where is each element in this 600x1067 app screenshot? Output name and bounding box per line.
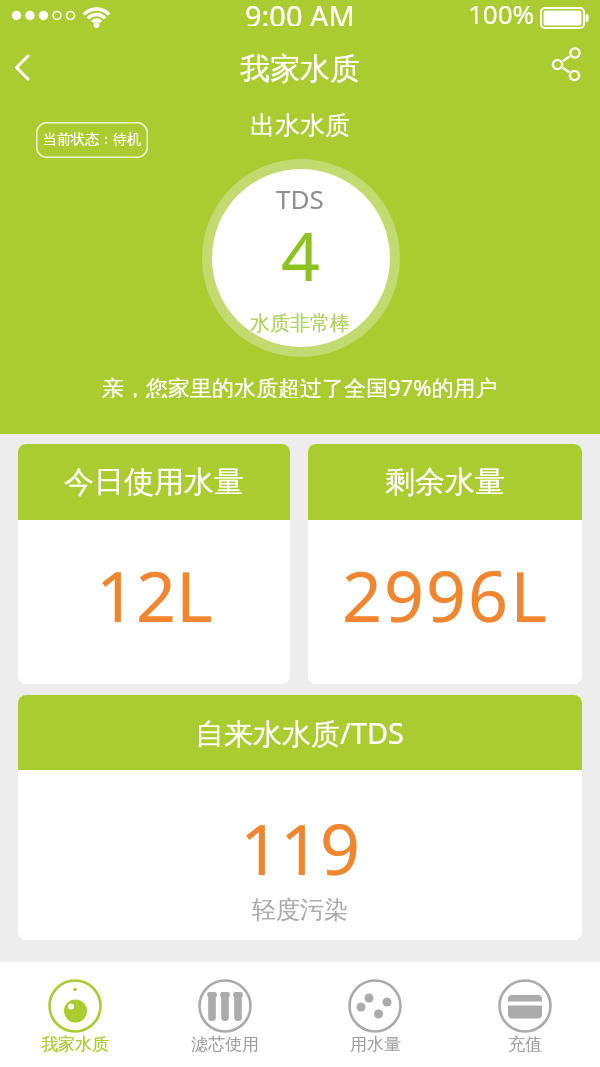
button[interactable]: 滤芯使用 (150, 962, 300, 1067)
staticText: 出水水质 (250, 110, 350, 138)
staticText: 我家水质 (240, 50, 360, 86)
button[interactable]: 我家水质 (0, 962, 150, 1067)
staticText: 2996L (342, 547, 549, 642)
staticText: 自来水水质/TDS (195, 713, 405, 753)
button[interactable] (540, 40, 596, 96)
staticText: 100% (468, 0, 535, 26)
staticText: TDS (276, 181, 324, 209)
staticText: 当前状态：待机 (43, 131, 141, 149)
staticText: 9:00 AM (245, 0, 355, 26)
staticText: 剩余水量 (385, 463, 505, 501)
button[interactable]: 用水量 (300, 962, 450, 1067)
staticText: 119 (240, 800, 361, 895)
staticText: 水质非常棒 (250, 311, 350, 335)
button[interactable]: 剩余水量 (308, 444, 582, 684)
button[interactable]: 今日使用水量 (18, 444, 290, 684)
button[interactable]: 自来水水质/TDS (18, 695, 582, 940)
staticText: 滤芯使用 (191, 1034, 259, 1055)
staticText: 4 (281, 208, 320, 288)
staticText: 充值 (508, 1034, 542, 1055)
staticText: 今日使用水量 (64, 463, 244, 501)
staticText: 12L (96, 547, 213, 642)
staticText: 亲，您家里的水质超过了全国97%的用户 (102, 372, 498, 398)
staticText: 我家水质 (41, 1034, 109, 1055)
button[interactable]: 充值 (450, 962, 600, 1067)
button[interactable] (0, 40, 56, 96)
staticText: 轻度污染 (252, 895, 348, 923)
staticText: 用水量 (350, 1034, 401, 1055)
